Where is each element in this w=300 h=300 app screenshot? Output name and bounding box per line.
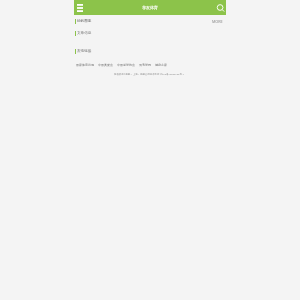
staticText: 扬帆圈事 xyxy=(77,19,92,24)
button[interactable]: 国家体育总局 xyxy=(76,63,94,67)
staticText: MORE xyxy=(212,19,223,24)
staticText: 友情链接 xyxy=(77,49,92,54)
button[interactable]: 中国篮球协会 xyxy=(117,63,135,67)
button[interactable]: Search xyxy=(215,0,226,15)
button[interactable]: 友情链接 xyxy=(75,48,223,54)
staticText: 文章信息 xyxy=(77,31,92,36)
button[interactable]: 羽毛球网 xyxy=(139,63,151,67)
button[interactable]: 健身之家 xyxy=(155,63,167,67)
staticText: 版权所有©扬帆 | 上海 | 扬帆公司技术支持 沪ICP备16025165号-1 xyxy=(75,72,223,75)
button[interactable]: Menu xyxy=(74,0,86,15)
staticText: 享友体育 xyxy=(142,5,158,10)
button[interactable]: 扬帆圈事 xyxy=(75,18,223,24)
button[interactable]: 文章信息 xyxy=(75,30,223,36)
button[interactable]: 中国奥委会 xyxy=(98,63,113,67)
